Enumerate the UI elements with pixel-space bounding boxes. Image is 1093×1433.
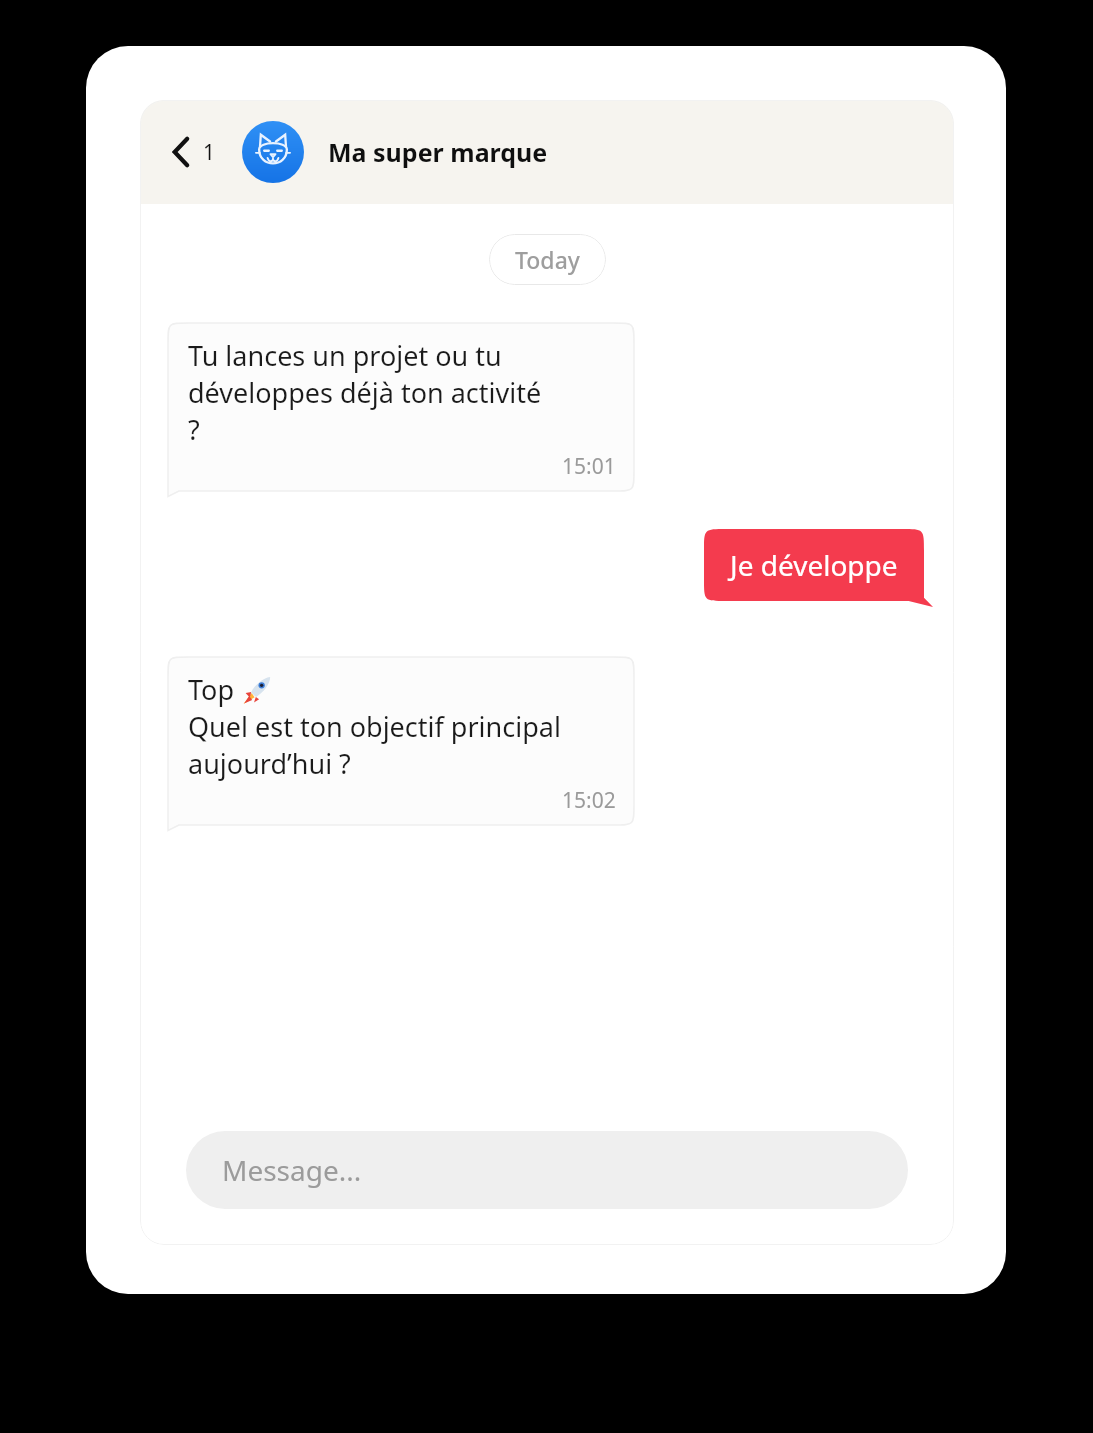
staticText: Ma super marque: [328, 135, 548, 169]
button[interactable]: Top: [168, 657, 634, 825]
staticText: Today: [515, 244, 580, 275]
staticText: 15:01: [562, 452, 616, 481]
staticText: ?: [188, 411, 200, 448]
staticText: développes déjà ton activité: [188, 374, 542, 411]
button[interactable]: Tu lances un projet ou tu: [168, 323, 634, 491]
button[interactable]: Message...: [186, 1131, 908, 1209]
button[interactable]: Ma super marque avatar: [242, 121, 304, 183]
staticText: Quel est ton objectif principal: [188, 708, 561, 745]
staticText: aujourd’hui ?: [188, 745, 351, 782]
staticText: 15:02: [562, 786, 616, 815]
button[interactable]: Je développe: [704, 529, 924, 601]
staticText: Tu lances un projet ou tu: [188, 337, 502, 374]
button[interactable]: Back, 1 unread: [166, 127, 222, 177]
staticText: Je développe: [730, 546, 898, 584]
button[interactable]: Today: [489, 234, 606, 285]
staticText: Top: [188, 671, 242, 708]
staticText: 1: [203, 138, 216, 167]
staticText: Message...: [222, 1151, 362, 1189]
